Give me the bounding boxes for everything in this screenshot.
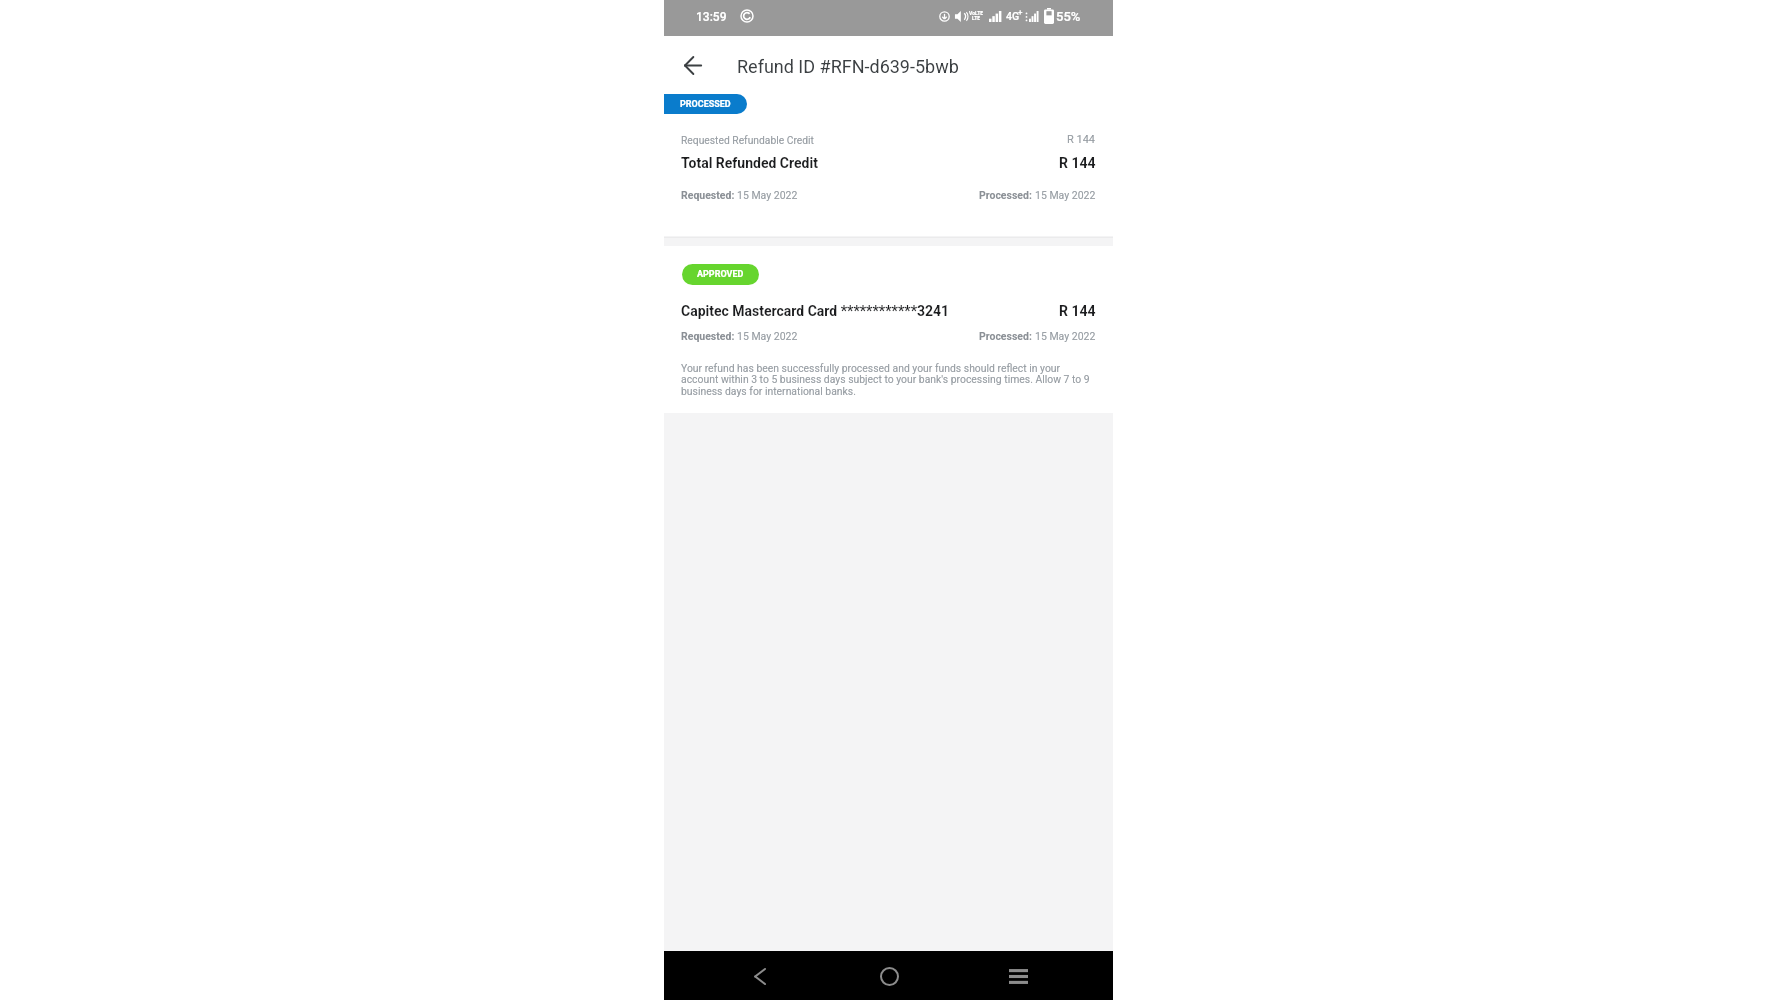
button[interactable]: PROCESSED (664, 94, 747, 114)
staticText: Requested Refundable Credit (681, 134, 814, 146)
staticText: VoLTE (969, 10, 984, 16)
staticText: Processed: (979, 330, 1035, 342)
staticText: 15 May 2022 (1035, 330, 1096, 342)
staticText: 13:59 (696, 10, 727, 24)
staticText: PROCESSED (680, 99, 731, 110)
staticText: Refund ID #RFN-d639-5bwb (737, 56, 959, 77)
staticText: APPROVED (697, 269, 744, 280)
staticText: Requested: (681, 330, 737, 342)
button[interactable]: Recent apps (994, 952, 1042, 1000)
button[interactable]: Back (675, 47, 711, 83)
button[interactable]: APPROVED (682, 264, 759, 285)
staticText: Your refund has been successfully proces… (681, 362, 1091, 398)
button[interactable]: Back (735, 952, 783, 1000)
staticText: R 144 (1059, 155, 1096, 171)
staticText: 15 May 2022 (737, 330, 798, 342)
staticText: 4G (1006, 10, 1020, 22)
staticText: LTE (972, 15, 981, 21)
staticText: 15 May 2022 (737, 189, 798, 201)
staticText: 15 May 2022 (1035, 189, 1096, 201)
staticText: 55% (1056, 9, 1081, 24)
staticText: + (1018, 8, 1023, 17)
staticText: Total Refunded Credit (681, 155, 818, 171)
staticText: R 144 (1059, 303, 1096, 319)
staticText: Processed: (979, 189, 1035, 201)
button[interactable]: Home (865, 952, 913, 1000)
staticText: R 144 (1067, 133, 1096, 146)
staticText: Requested: (681, 189, 737, 201)
staticText: Capitec Mastercard Card ************3241 (681, 303, 950, 319)
